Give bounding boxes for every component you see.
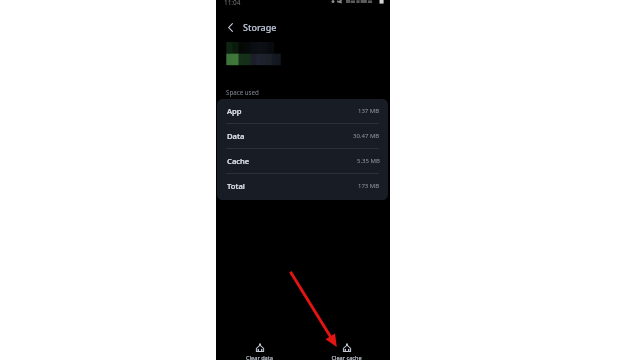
staticText: 30.47 MB — [353, 132, 380, 140]
staticText: Space used — [226, 88, 259, 96]
button[interactable]: App — [217, 99, 388, 124]
button[interactable]: Data — [217, 124, 388, 149]
staticText: Clear data — [246, 354, 273, 360]
staticText: Total — [227, 181, 245, 191]
button[interactable]: Clear cache — [303, 343, 390, 360]
staticText: 5.35 MB — [357, 157, 380, 165]
staticText: 11:04 — [224, 0, 241, 7]
staticText: Cache — [227, 156, 250, 166]
button[interactable]: Total — [217, 174, 388, 199]
staticText: Storage — [243, 21, 277, 33]
button[interactable]: Cache — [217, 149, 388, 174]
staticText: App — [227, 106, 242, 116]
staticText: Data — [227, 131, 245, 141]
staticText: 173 MB — [358, 182, 380, 190]
staticText: 137 MB — [358, 107, 380, 115]
staticText: Clear cache — [331, 354, 362, 360]
button[interactable]: Clear data — [216, 343, 303, 360]
button[interactable]: Back — [223, 20, 237, 34]
